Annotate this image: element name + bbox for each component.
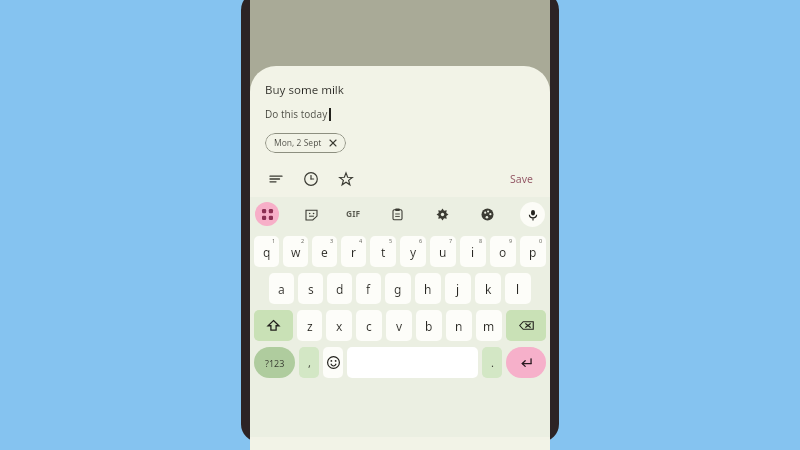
staticText: b xyxy=(425,318,433,334)
staticText: e xyxy=(321,244,328,260)
button[interactable]: p xyxy=(520,236,546,267)
button[interactable]: j xyxy=(445,273,471,304)
button[interactable]: v xyxy=(386,310,412,341)
button[interactable]: d xyxy=(327,273,352,304)
button[interactable]: e xyxy=(312,236,337,267)
staticText: o xyxy=(499,244,507,260)
staticText: , xyxy=(308,355,311,370)
staticText: d xyxy=(336,281,344,297)
button[interactable]: q xyxy=(254,236,279,267)
staticText: j xyxy=(456,281,460,297)
button[interactable]: g xyxy=(385,273,411,304)
staticText: v xyxy=(396,318,403,334)
staticText: q xyxy=(263,244,271,260)
button[interactable]: c xyxy=(356,310,382,341)
staticText: 4 xyxy=(359,237,363,244)
button[interactable]: o xyxy=(490,236,516,267)
button[interactable]: s xyxy=(298,273,323,304)
staticText: 3 xyxy=(330,237,334,244)
button[interactable]: r xyxy=(341,236,366,267)
button[interactable]: u xyxy=(430,236,456,267)
staticText: u xyxy=(439,244,447,260)
staticText: 6 xyxy=(419,237,423,244)
button[interactable]: Voice input xyxy=(520,202,545,227)
button[interactable]: Description xyxy=(265,168,287,190)
button[interactable]: Stickers xyxy=(299,202,323,226)
staticText: 1 xyxy=(272,237,276,244)
staticText: 5 xyxy=(389,237,393,244)
button[interactable]: Clipboard xyxy=(385,202,409,226)
button[interactable]: n xyxy=(446,310,472,341)
button[interactable]: f xyxy=(356,273,381,304)
button[interactable]: Emoji xyxy=(323,347,343,378)
staticText: w xyxy=(291,244,301,260)
button[interactable]: Enter xyxy=(506,347,546,378)
button[interactable]: m xyxy=(476,310,502,341)
staticText: ?123 xyxy=(265,357,285,369)
staticText: i xyxy=(471,244,475,260)
button[interactable]: y xyxy=(400,236,426,267)
button[interactable]: Settings xyxy=(430,202,454,226)
staticText: GIF xyxy=(346,208,361,220)
staticText: r xyxy=(351,244,356,260)
staticText: m xyxy=(483,318,495,334)
staticText: g xyxy=(394,281,402,297)
staticText: l xyxy=(516,281,520,297)
button[interactable]: Mon, 2 Sept xyxy=(265,133,346,153)
staticText: x xyxy=(336,318,343,334)
staticText: h xyxy=(424,281,432,297)
staticText: t xyxy=(381,244,386,260)
staticText: y xyxy=(410,244,417,260)
staticText: Buy some milk xyxy=(265,82,344,98)
button[interactable]: i xyxy=(460,236,486,267)
button[interactable]: x xyxy=(326,310,352,341)
staticText: p xyxy=(529,244,537,260)
button[interactable]: ?123 xyxy=(254,347,295,378)
button[interactable]: Keyboard apps xyxy=(255,202,279,226)
button[interactable]: h xyxy=(415,273,441,304)
button[interactable]: b xyxy=(416,310,442,341)
staticText: 7 xyxy=(449,237,453,244)
button[interactable]: Backspace xyxy=(506,310,546,341)
staticText: Mon, 2 Sept xyxy=(274,137,322,149)
staticText: a xyxy=(278,281,285,297)
staticText: 9 xyxy=(509,237,513,244)
button[interactable]: Save xyxy=(507,170,536,188)
staticText: Do this today xyxy=(265,107,328,121)
staticText: s xyxy=(308,281,314,297)
staticText: f xyxy=(366,281,371,297)
staticText: 0 xyxy=(539,237,543,244)
button[interactable]: GIF xyxy=(343,202,364,226)
button[interactable]: l xyxy=(505,273,531,304)
button[interactable]: . xyxy=(482,347,502,378)
button[interactable]: , xyxy=(299,347,319,378)
button[interactable]: a xyxy=(269,273,294,304)
button[interactable]: Shift xyxy=(254,310,293,341)
staticText: n xyxy=(455,318,463,334)
button[interactable]: t xyxy=(370,236,396,267)
button[interactable]: Themes xyxy=(475,202,499,226)
button[interactable]: z xyxy=(297,310,322,341)
button[interactable]: Set time xyxy=(300,168,322,190)
other: Remove date xyxy=(329,139,337,147)
staticText: 2 xyxy=(301,237,305,244)
staticText: . xyxy=(491,355,494,370)
staticText: c xyxy=(366,318,372,334)
staticText: z xyxy=(307,318,313,334)
button[interactable]: w xyxy=(283,236,308,267)
staticText: k xyxy=(485,281,492,297)
button[interactable]: Star xyxy=(335,168,357,190)
button[interactable]: k xyxy=(475,273,501,304)
staticText: Save xyxy=(510,172,533,186)
staticText: 8 xyxy=(479,237,483,244)
